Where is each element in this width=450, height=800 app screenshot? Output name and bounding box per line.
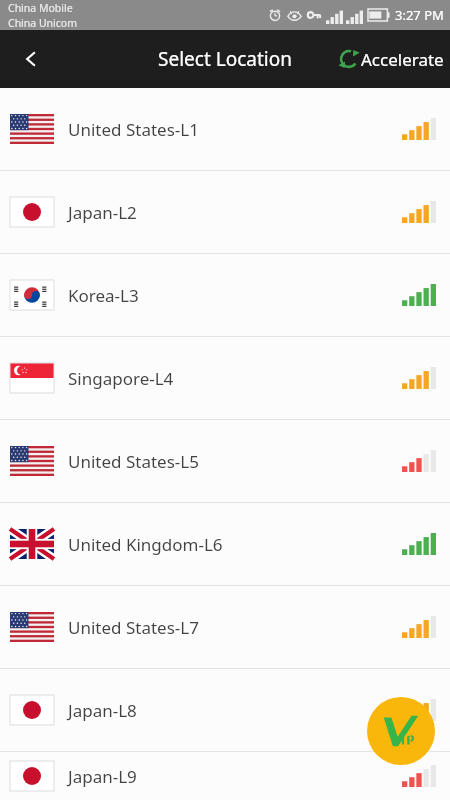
staticText: 3:27 PM xyxy=(395,6,444,24)
button[interactable]: United States-L7 xyxy=(0,586,450,668)
staticText: Japan-L8 xyxy=(68,699,137,722)
staticText: United States-L1 xyxy=(68,118,199,141)
staticText: Accelerate xyxy=(361,48,444,71)
button[interactable]: Back xyxy=(0,30,64,88)
button[interactable]: Accelerate xyxy=(338,30,444,88)
button[interactable]: Japan-L2 xyxy=(0,171,450,253)
staticText: Select Location xyxy=(158,46,292,72)
button[interactable]: Korea-L3 xyxy=(0,254,450,336)
staticText: United States-L7 xyxy=(68,616,199,639)
staticText: Korea-L3 xyxy=(68,284,139,307)
staticText: Japan-L2 xyxy=(68,201,137,224)
staticText: United Kingdom-L6 xyxy=(68,533,223,556)
button[interactable]: VIP xyxy=(367,697,435,765)
staticText: China Mobile xyxy=(8,1,73,15)
staticText: Japan-L9 xyxy=(68,765,137,788)
button[interactable]: United Kingdom-L6 xyxy=(0,503,450,585)
button[interactable]: United States-L5 xyxy=(0,420,450,502)
button[interactable]: Japan-L9 xyxy=(0,752,450,800)
staticText: China Unicom xyxy=(8,16,78,30)
staticText: Singapore-L4 xyxy=(68,367,174,390)
staticText: United States-L5 xyxy=(68,450,199,473)
button[interactable]: Singapore-L4 xyxy=(0,337,450,419)
button[interactable]: United States-L1 xyxy=(0,88,450,170)
button[interactable]: Japan-L8 xyxy=(0,669,450,751)
